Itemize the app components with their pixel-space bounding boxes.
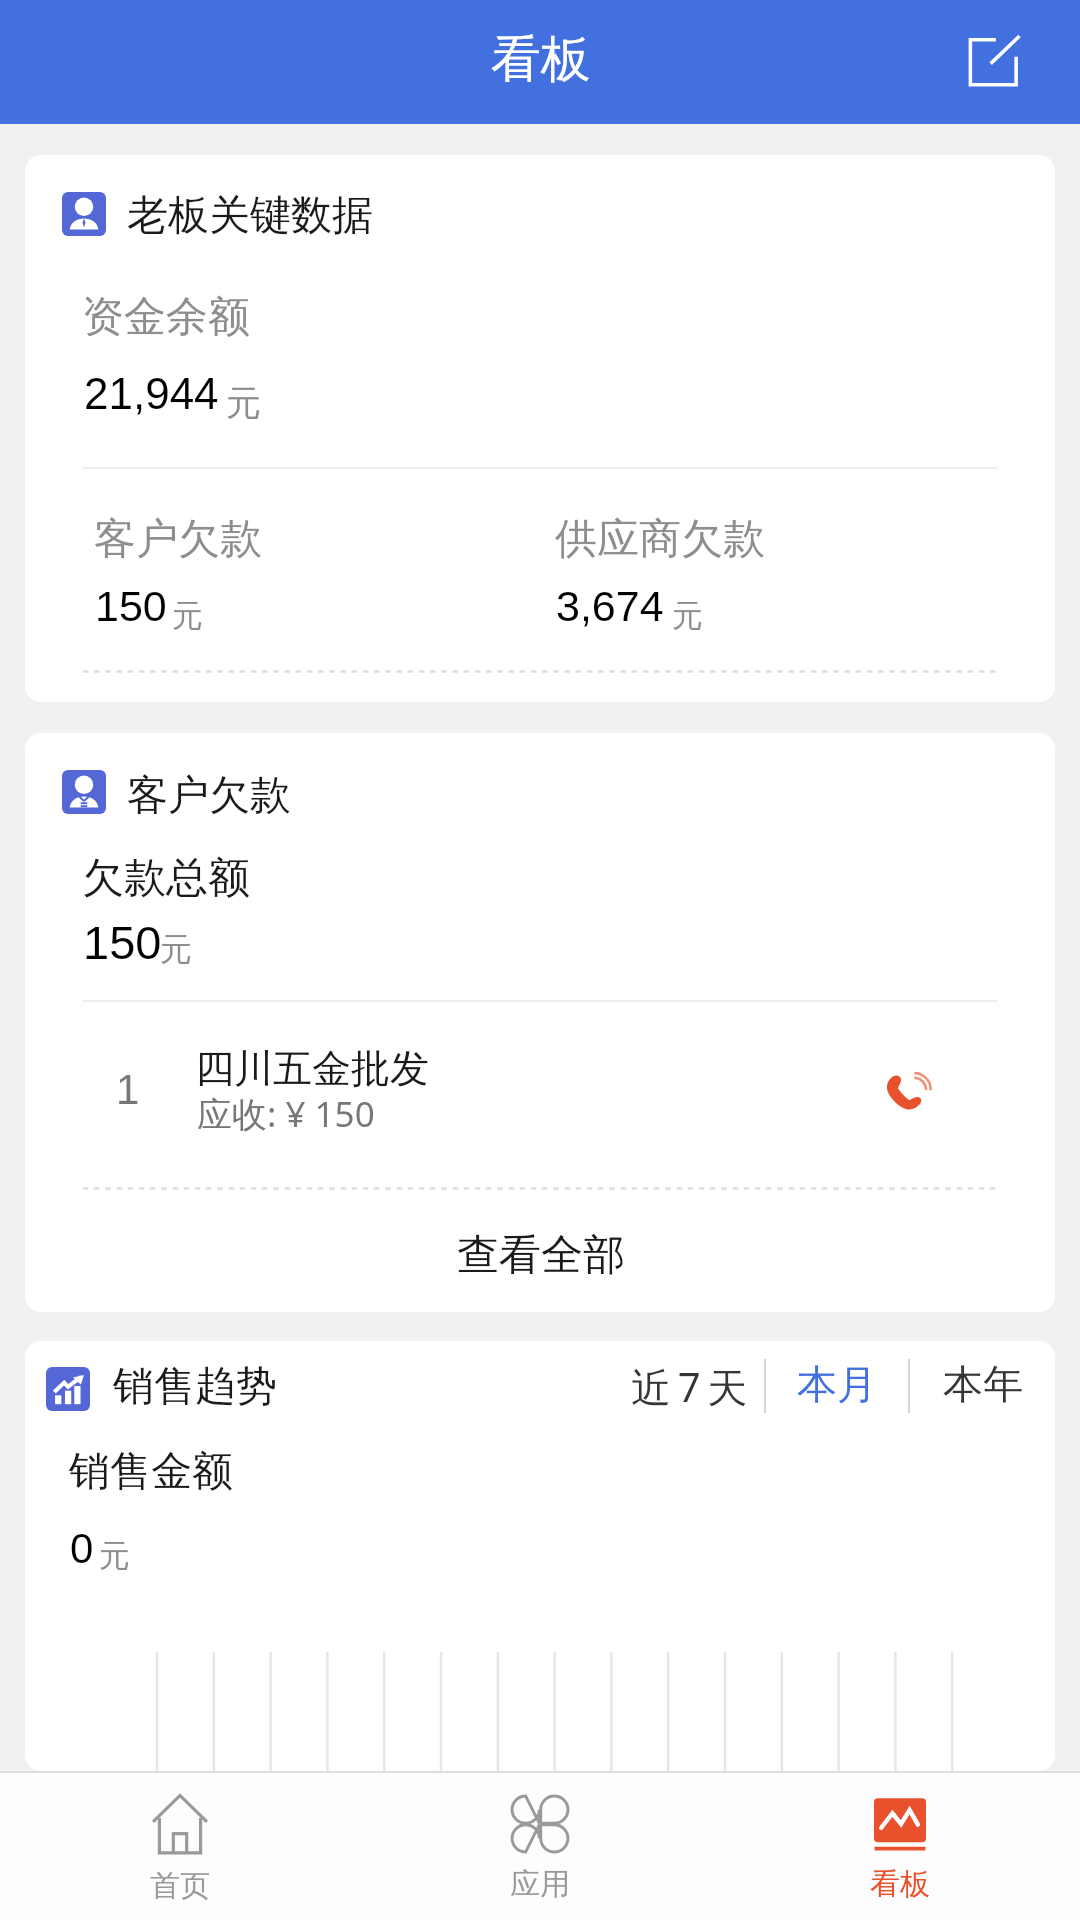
button[interactable]: 本月 (777, 1349, 893, 1415)
staticText: 资金余额 (82, 291, 250, 344)
staticText: 1 (116, 1066, 140, 1113)
staticText: 元 (99, 1536, 130, 1575)
button[interactable]: 1 (25, 1002, 1055, 1186)
button[interactable]: 首页 (0, 1773, 360, 1920)
button[interactable]: 本年 (923, 1349, 1039, 1415)
staticText: 元 (672, 596, 703, 635)
staticText: 欠款总额 (82, 852, 250, 905)
staticText: 元 (226, 381, 261, 425)
staticText: 供应商欠款 (555, 513, 765, 566)
staticText: 老板关键数据 (127, 190, 373, 242)
staticText: 150 (83, 916, 162, 969)
staticText: 销售金额 (69, 1446, 233, 1498)
staticText: 0 (70, 1525, 94, 1572)
staticText: 近 7 天 (631, 1359, 748, 1414)
staticText: 销售趋势 (113, 1361, 277, 1413)
staticText: 150 (95, 582, 167, 630)
staticText: 首页 (150, 1867, 210, 1905)
button[interactable]: Call (872, 1055, 942, 1125)
staticText: 看板 (870, 1865, 930, 1903)
staticText: 3,674 (556, 582, 664, 630)
staticText: 客户欠款 (94, 513, 262, 566)
staticText: 查看全部 (457, 1229, 625, 1282)
staticText: 应用 (510, 1865, 570, 1903)
button[interactable]: 查看全部 (25, 1190, 1055, 1312)
staticText: 元 (172, 596, 203, 635)
staticText: 客户欠款 (127, 770, 291, 822)
staticText: 应收: ¥ 150 (197, 1090, 375, 1138)
button[interactable]: 近 7 天 (611, 1349, 754, 1415)
staticText: 本年 (943, 1359, 1023, 1409)
staticText: 元 (160, 929, 192, 969)
staticText: 四川五金批发 (195, 1044, 429, 1093)
button[interactable]: 看板 (720, 1773, 1080, 1920)
staticText: 看板 (491, 28, 591, 91)
staticText: 21,944 (84, 369, 219, 418)
staticText: 本月 (797, 1359, 877, 1409)
button[interactable]: 应用 (360, 1773, 720, 1920)
button[interactable]: Edit (943, 11, 1043, 111)
